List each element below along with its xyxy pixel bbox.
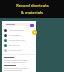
button[interactable]	[4, 38, 34, 43]
button[interactable]: Create	[32, 30, 37, 35]
staticText: Record shortcuts	[16, 3, 49, 8]
button[interactable]	[4, 28, 34, 33]
staticText: & materials	[21, 10, 43, 15]
button[interactable]	[4, 48, 34, 53]
button[interactable]: Label	[30, 24, 34, 27]
button[interactable]	[4, 23, 34, 26]
button[interactable]	[4, 43, 34, 48]
button[interactable]	[4, 33, 34, 38]
